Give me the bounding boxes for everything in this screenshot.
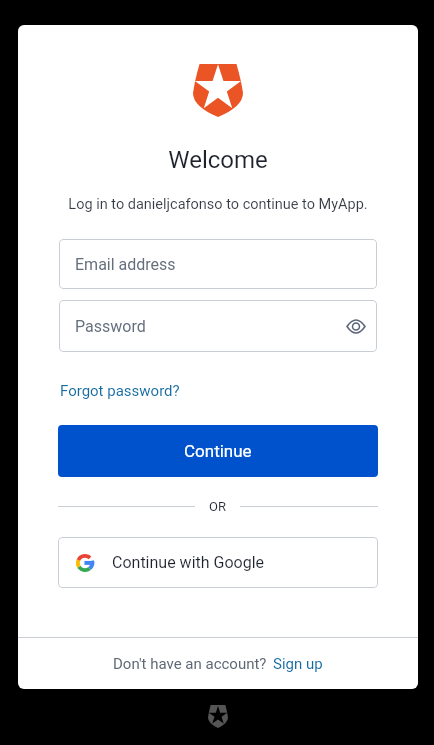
button[interactable]: Continue with Google — [58, 537, 378, 588]
staticText: Continue with Google — [112, 553, 265, 572]
button[interactable]: Forgot password? — [60, 382, 180, 400]
staticText: Sign up — [273, 655, 323, 673]
staticText: Email address — [75, 255, 176, 274]
staticText: Log in to danieljcafonso to continue to … — [18, 196, 418, 213]
button[interactable]: Continue — [58, 425, 378, 477]
staticText: Welcome — [18, 146, 418, 174]
staticText: Don't have an account? — [113, 655, 267, 673]
button[interactable]: Password — [59, 300, 377, 352]
button[interactable]: Show password — [340, 310, 372, 342]
button[interactable]: Email address — [59, 239, 377, 289]
staticText: Forgot password? — [60, 382, 180, 400]
staticText: OR — [209, 499, 226, 514]
staticText: Password — [75, 317, 146, 336]
button[interactable]: Sign up — [273, 655, 323, 673]
staticText: Continue — [184, 441, 252, 461]
